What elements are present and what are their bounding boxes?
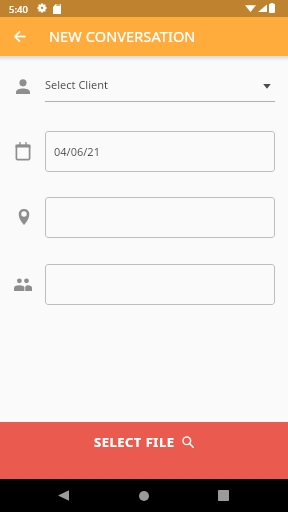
button[interactable]: 04/06/21 <box>45 131 275 172</box>
button[interactable]: Recents <box>209 481 238 510</box>
staticText: Select Client <box>45 77 108 92</box>
button[interactable] <box>45 197 275 238</box>
button[interactable]: Back <box>49 481 78 510</box>
button[interactable]: Home <box>129 481 158 510</box>
button[interactable] <box>45 264 275 305</box>
staticText: 5:40 <box>9 3 28 16</box>
staticText: SELECT FILE <box>94 433 175 451</box>
button[interactable]: Select Client <box>45 72 275 104</box>
staticText: NEW CONVERSATION <box>49 26 196 46</box>
button[interactable]: Back <box>8 17 32 56</box>
button[interactable]: SELECT FILE <box>0 422 288 479</box>
staticText: 04/06/21 <box>54 144 100 159</box>
